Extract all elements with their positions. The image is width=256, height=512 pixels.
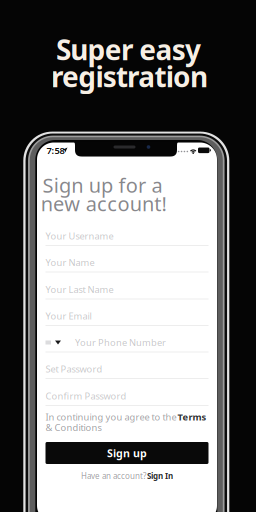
button[interactable]: Your Phone Number [45, 332, 208, 352]
button[interactable]: Your Name [45, 252, 208, 272]
button[interactable]: Set Password [45, 359, 208, 379]
staticText: Your Phone Number [75, 336, 166, 349]
staticText: Your Last Name [45, 283, 113, 296]
button[interactable]: Confirm Password [45, 386, 208, 406]
button[interactable]: Your Username [45, 226, 208, 246]
staticText: Confirm Password [45, 390, 126, 402]
button[interactable]: Have an account? [81, 471, 173, 481]
staticText: Terms [177, 411, 206, 423]
staticText: Your Name [45, 256, 94, 269]
staticText: Your Username [45, 230, 113, 242]
staticText: new account! [41, 190, 166, 217]
staticText: Have an account? [81, 471, 146, 481]
staticText: Your Email [45, 310, 91, 322]
staticText: Super easy [56, 31, 201, 68]
button[interactable]: In continuing you agree to the [45, 412, 208, 422]
staticText: & Conditions [45, 421, 101, 434]
button[interactable]: Sign up [45, 442, 208, 464]
staticText: Sign up for a [43, 172, 163, 198]
staticText: Set Password [45, 363, 102, 375]
staticText: 7:58 [46, 144, 64, 157]
staticText: registration [51, 58, 208, 95]
staticText: Sign In [147, 471, 173, 481]
button[interactable]: Your Last Name [45, 279, 208, 299]
staticText: Sign up [107, 446, 147, 460]
button[interactable]: Your Email [45, 306, 208, 326]
staticText: In continuing you agree to the [45, 411, 176, 423]
